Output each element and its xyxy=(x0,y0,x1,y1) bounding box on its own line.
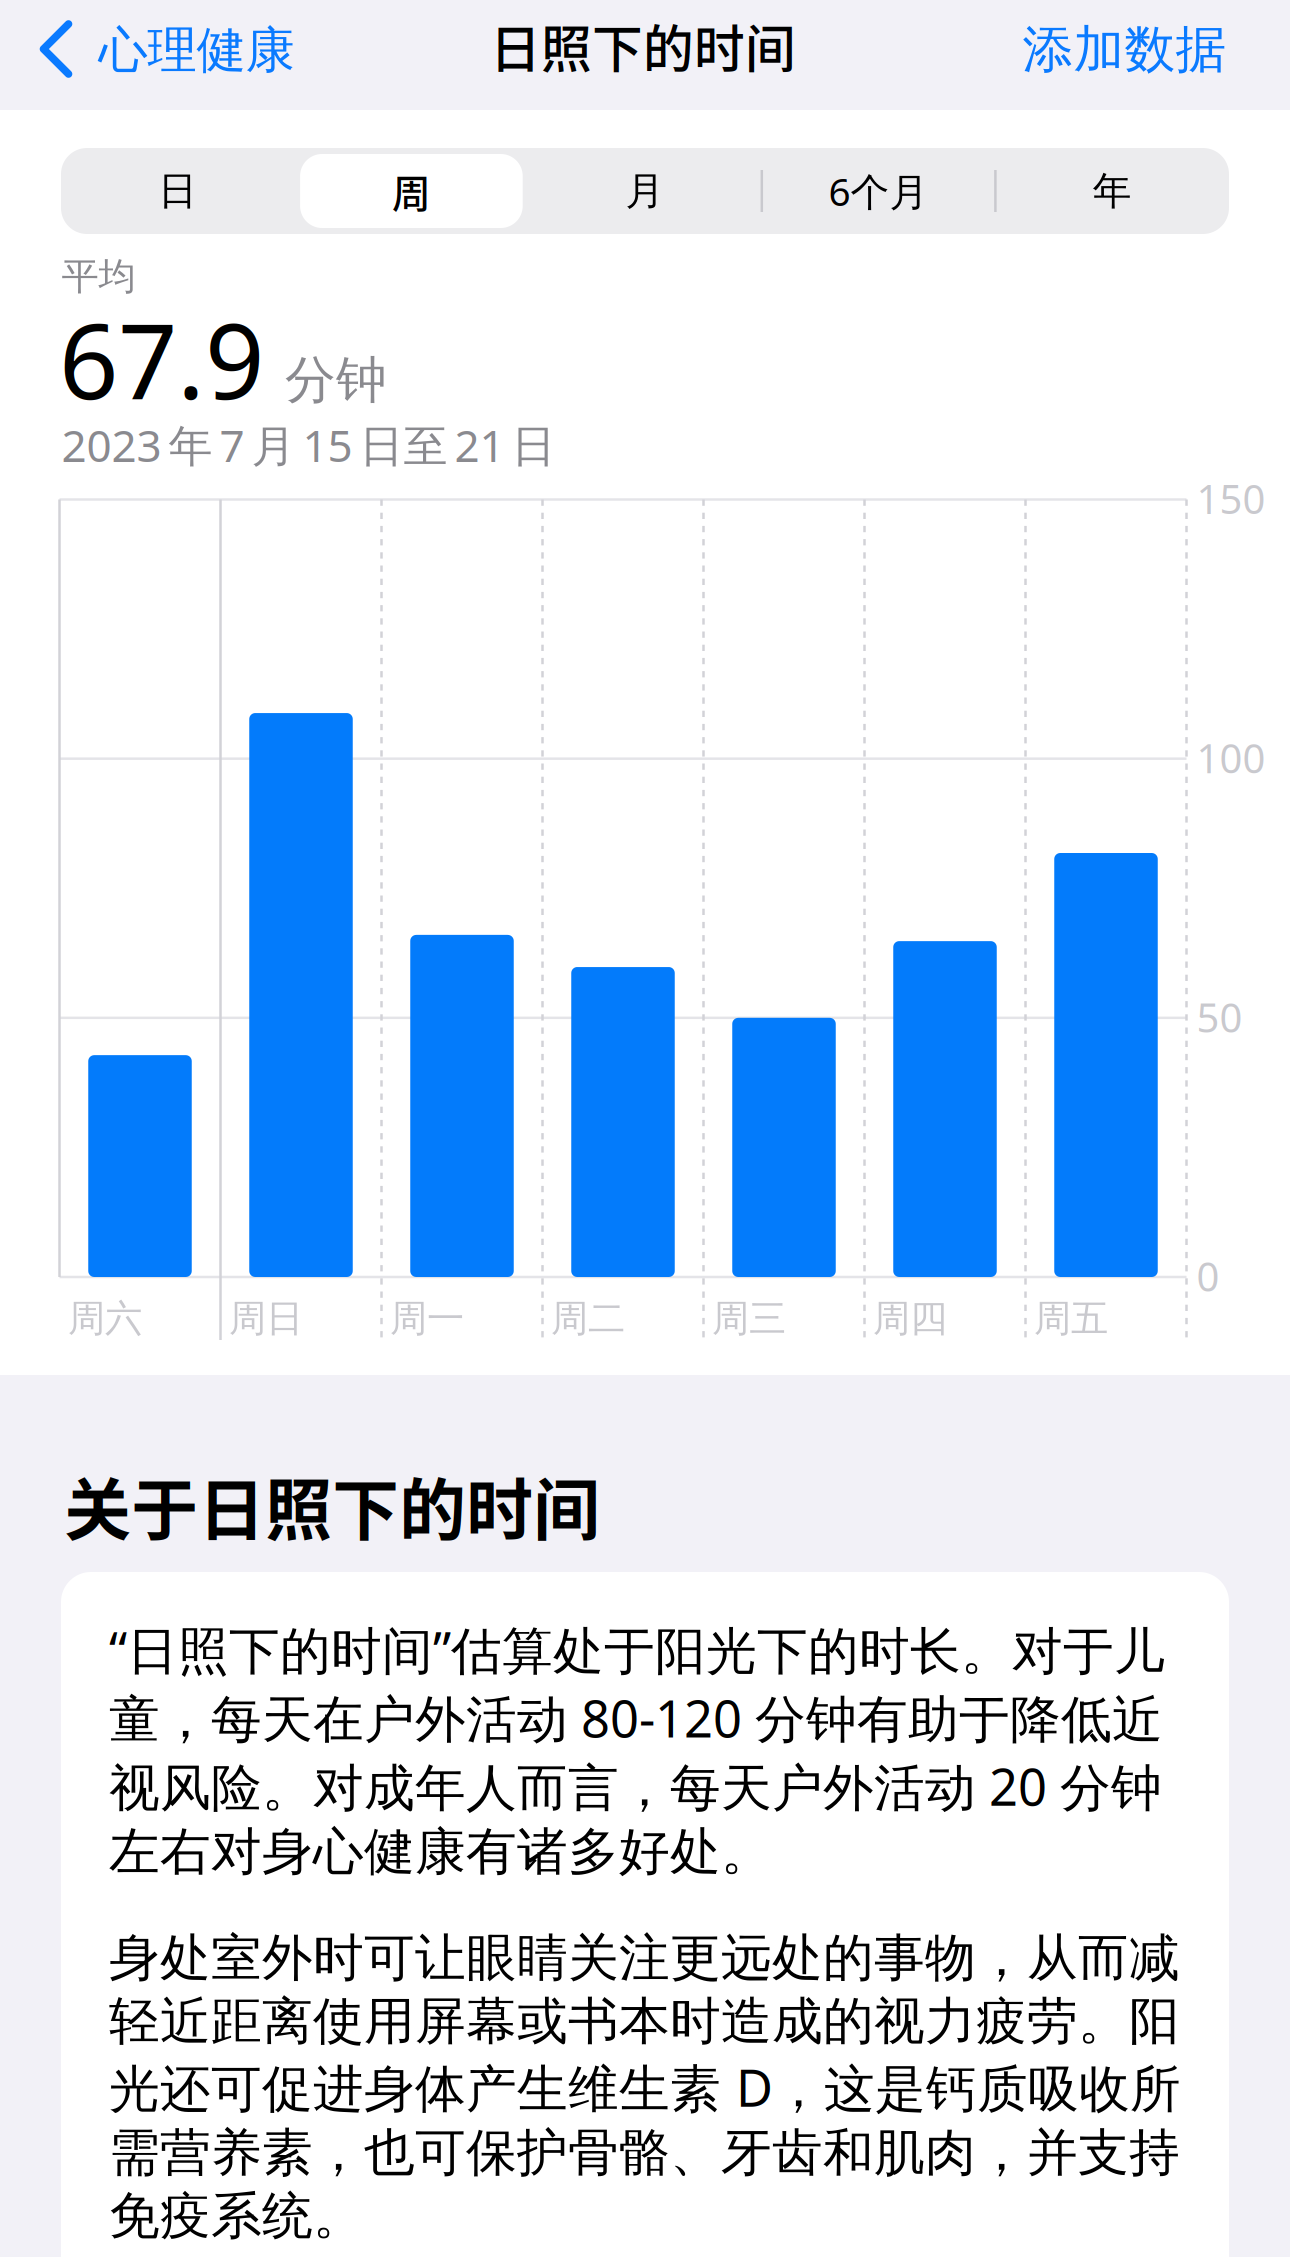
staticText: 分钟 xyxy=(285,349,387,411)
button[interactable]: 6个月 xyxy=(762,148,995,234)
staticText: 周日 xyxy=(229,1296,303,1342)
staticText: 50 xyxy=(1196,990,1242,1043)
button[interactable]: 日 xyxy=(61,148,295,234)
staticText: 周二 xyxy=(551,1296,625,1342)
staticText: 关于日照下的时间 xyxy=(64,1457,600,1554)
staticText: 心理健康 xyxy=(99,20,295,80)
staticText: 年 xyxy=(1093,167,1132,215)
staticText: 周三 xyxy=(712,1296,786,1342)
staticText: 150 xyxy=(1196,472,1265,525)
button[interactable]: 年 xyxy=(995,148,1229,234)
staticText: 添加数据 xyxy=(1023,19,1227,81)
staticText: 日 xyxy=(158,167,197,215)
button[interactable]: 添加数据 xyxy=(1000,0,1290,110)
staticText: 0 xyxy=(1196,1249,1219,1303)
staticText: 6个月 xyxy=(829,165,929,217)
staticText: 周一 xyxy=(390,1296,464,1342)
staticText: 月 xyxy=(625,167,664,215)
staticText: 周五 xyxy=(1034,1296,1108,1342)
staticText: 身处室外时可让眼睛关注更远处的事物，从而减轻近距离使用屏幕或书本时造成的视力疲劳… xyxy=(109,1927,1181,2247)
button[interactable]: 周 xyxy=(295,148,528,234)
staticText: 100 xyxy=(1196,731,1265,784)
staticText: 周六 xyxy=(68,1296,142,1342)
button[interactable]: 月 xyxy=(528,148,762,234)
staticText: 平均 xyxy=(62,254,136,299)
staticText: 2023 年 7 月 15 日至 21 日 xyxy=(61,416,555,474)
staticText: “日照下的时间”估算处于阳光下的时长。对于儿童，每天在户外活动 80-120 分… xyxy=(109,1616,1165,1883)
staticText: 周 xyxy=(392,163,431,219)
staticText: 周四 xyxy=(873,1296,947,1342)
staticText: 67.9 xyxy=(59,290,264,428)
button[interactable]: 心理健康 xyxy=(0,0,360,110)
staticText: 日照下的时间 xyxy=(490,9,796,82)
